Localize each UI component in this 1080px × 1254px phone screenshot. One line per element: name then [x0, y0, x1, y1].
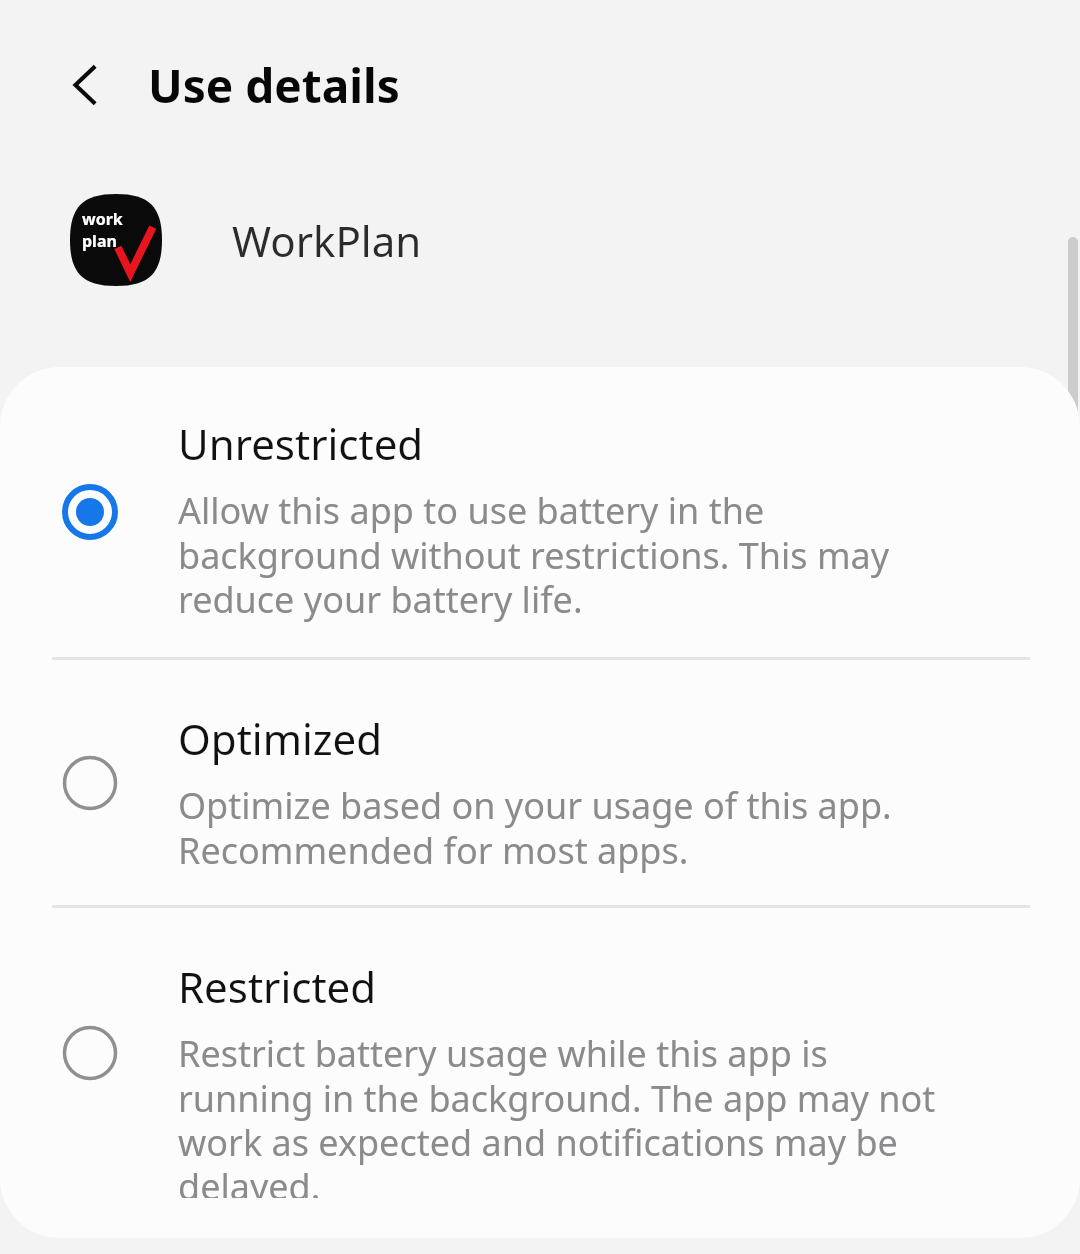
staticText: Optimized [178, 710, 382, 767]
staticText: Restrict battery usage while this app is… [178, 1029, 936, 1198]
button[interactable]: Restricted [0, 908, 1080, 1198]
staticText: Allow this app to use battery in the bac… [178, 486, 890, 623]
button[interactable]: Optimized [0, 660, 1080, 905]
staticText: WorkPlan [232, 212, 422, 269]
staticText: work [82, 208, 123, 230]
staticText: Optimize based on your usage of this app… [178, 781, 892, 874]
staticText: Restricted [178, 958, 377, 1015]
button[interactable]: Unrestricted [0, 367, 1080, 657]
staticText: Use details [148, 54, 400, 117]
staticText: plan [82, 230, 117, 252]
button[interactable]: Back [48, 47, 124, 123]
staticText: Unrestricted [178, 415, 424, 472]
